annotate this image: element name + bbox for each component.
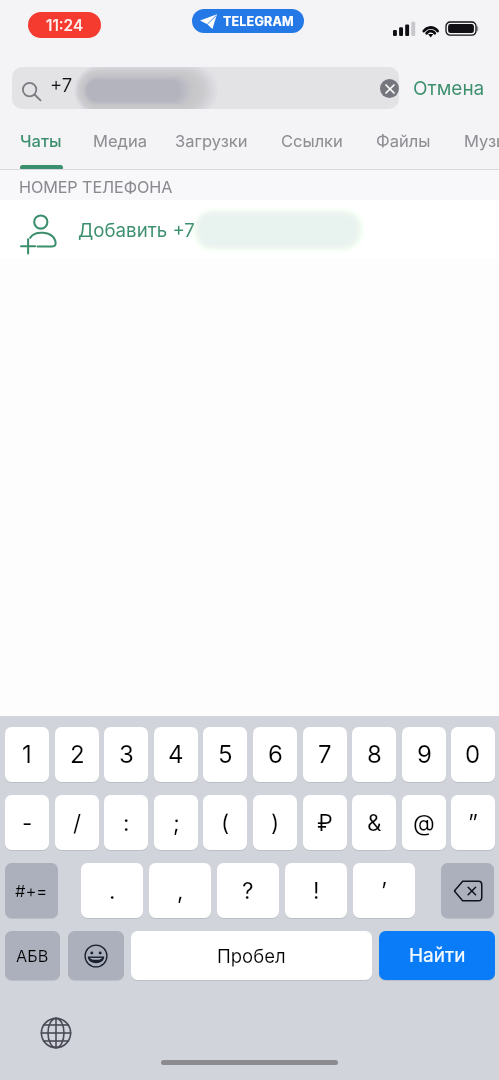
button[interactable]: ? — [217, 863, 279, 918]
staticText: @ — [413, 809, 435, 836]
staticText: Отмена — [413, 77, 485, 100]
button[interactable]: Ссылки — [271, 116, 357, 160]
staticText: #+= — [15, 881, 48, 901]
button[interactable]: АБВ — [5, 931, 60, 980]
button[interactable]: #+= — [5, 863, 58, 918]
staticText: Загрузки — [175, 131, 248, 151]
staticText: - — [22, 809, 33, 836]
button[interactable]: Recording time 11:24 — [28, 12, 101, 38]
button[interactable]: - — [5, 795, 49, 850]
button[interactable]: : — [104, 795, 148, 850]
button[interactable]: 0 — [451, 727, 495, 782]
staticText: Добавить +7 — [78, 219, 195, 242]
staticText: 4 — [168, 740, 184, 769]
staticText: 9 — [417, 740, 432, 769]
staticText: ? — [242, 877, 254, 904]
button[interactable]: 2 — [55, 727, 99, 782]
staticText: & — [367, 809, 382, 836]
button[interactable]: ” — [451, 795, 495, 850]
button[interactable]: Добавить +7 — [0, 200, 499, 258]
staticText: ( — [221, 809, 230, 836]
staticText: Файлы — [376, 131, 431, 151]
staticText: ₽ — [317, 809, 333, 836]
button[interactable]: Медиа — [83, 116, 157, 160]
button[interactable]: ( — [203, 795, 247, 850]
button[interactable]: Музы — [454, 116, 499, 160]
staticText: Музы — [464, 131, 499, 151]
staticText: 6 — [268, 740, 283, 769]
button[interactable]: , — [149, 863, 211, 918]
staticText: ; — [173, 809, 180, 836]
button[interactable]: 6 — [253, 727, 297, 782]
staticText: ! — [313, 877, 320, 904]
button[interactable]: ; — [154, 795, 198, 850]
button[interactable]: Загрузки — [165, 116, 263, 160]
button[interactable]: 7 — [303, 727, 347, 782]
button[interactable]: 8 — [352, 727, 396, 782]
button[interactable]: ₽ — [303, 795, 347, 850]
button[interactable]: 4 — [154, 727, 198, 782]
staticText: НОМЕР ТЕЛЕФОНА — [19, 177, 173, 197]
button[interactable]: Switch keyboard language — [39, 1016, 72, 1049]
staticText: Пробел — [217, 945, 286, 967]
button[interactable]: Backspace — [441, 863, 494, 918]
staticText: ” — [468, 809, 478, 836]
button[interactable]: Отмена — [405, 67, 493, 109]
button[interactable]: ) — [253, 795, 297, 850]
button[interactable]: 1 — [5, 727, 49, 782]
button[interactable]: Clear text — [380, 79, 399, 98]
staticText: 0 — [465, 740, 481, 769]
button[interactable]: . — [81, 863, 143, 918]
staticText: 8 — [367, 740, 382, 769]
button[interactable]: Telegram — [192, 9, 304, 33]
staticText: : — [123, 809, 130, 836]
button[interactable]: & — [352, 795, 396, 850]
button[interactable]: @ — [402, 795, 446, 850]
staticText: ’ — [381, 877, 387, 904]
staticText: 7 — [318, 740, 332, 769]
staticText: Ссылки — [281, 131, 343, 151]
staticText: Медиа — [93, 131, 147, 151]
staticText: 3 — [119, 740, 134, 769]
staticText: , — [177, 877, 184, 904]
button[interactable]: Найти — [379, 931, 495, 980]
button[interactable]: 9 — [402, 727, 446, 782]
button[interactable]: Чаты — [10, 116, 72, 160]
button[interactable]: Пробел — [131, 931, 372, 980]
button[interactable]: 3 — [104, 727, 148, 782]
button[interactable]: Файлы — [366, 116, 445, 160]
staticText: . — [109, 877, 116, 904]
staticText: +7 — [50, 74, 73, 96]
staticText: TELEGRAM — [223, 14, 294, 29]
staticText: 5 — [218, 740, 233, 769]
button[interactable]: ’ — [353, 863, 415, 918]
staticText: 11:24 — [46, 16, 84, 35]
staticText: 1 — [22, 740, 32, 769]
staticText: Чаты — [20, 131, 62, 151]
button[interactable]: +7 — [12, 67, 399, 109]
button[interactable]: 5 — [203, 727, 247, 782]
staticText: 2 — [70, 740, 85, 769]
button[interactable]: ! — [285, 863, 347, 918]
button[interactable]: / — [55, 795, 99, 850]
staticText: ) — [271, 809, 280, 836]
staticText: Найти — [409, 944, 466, 967]
staticText: АБВ — [16, 946, 49, 966]
button[interactable]: Emoji — [68, 931, 124, 980]
staticText: / — [73, 809, 82, 836]
